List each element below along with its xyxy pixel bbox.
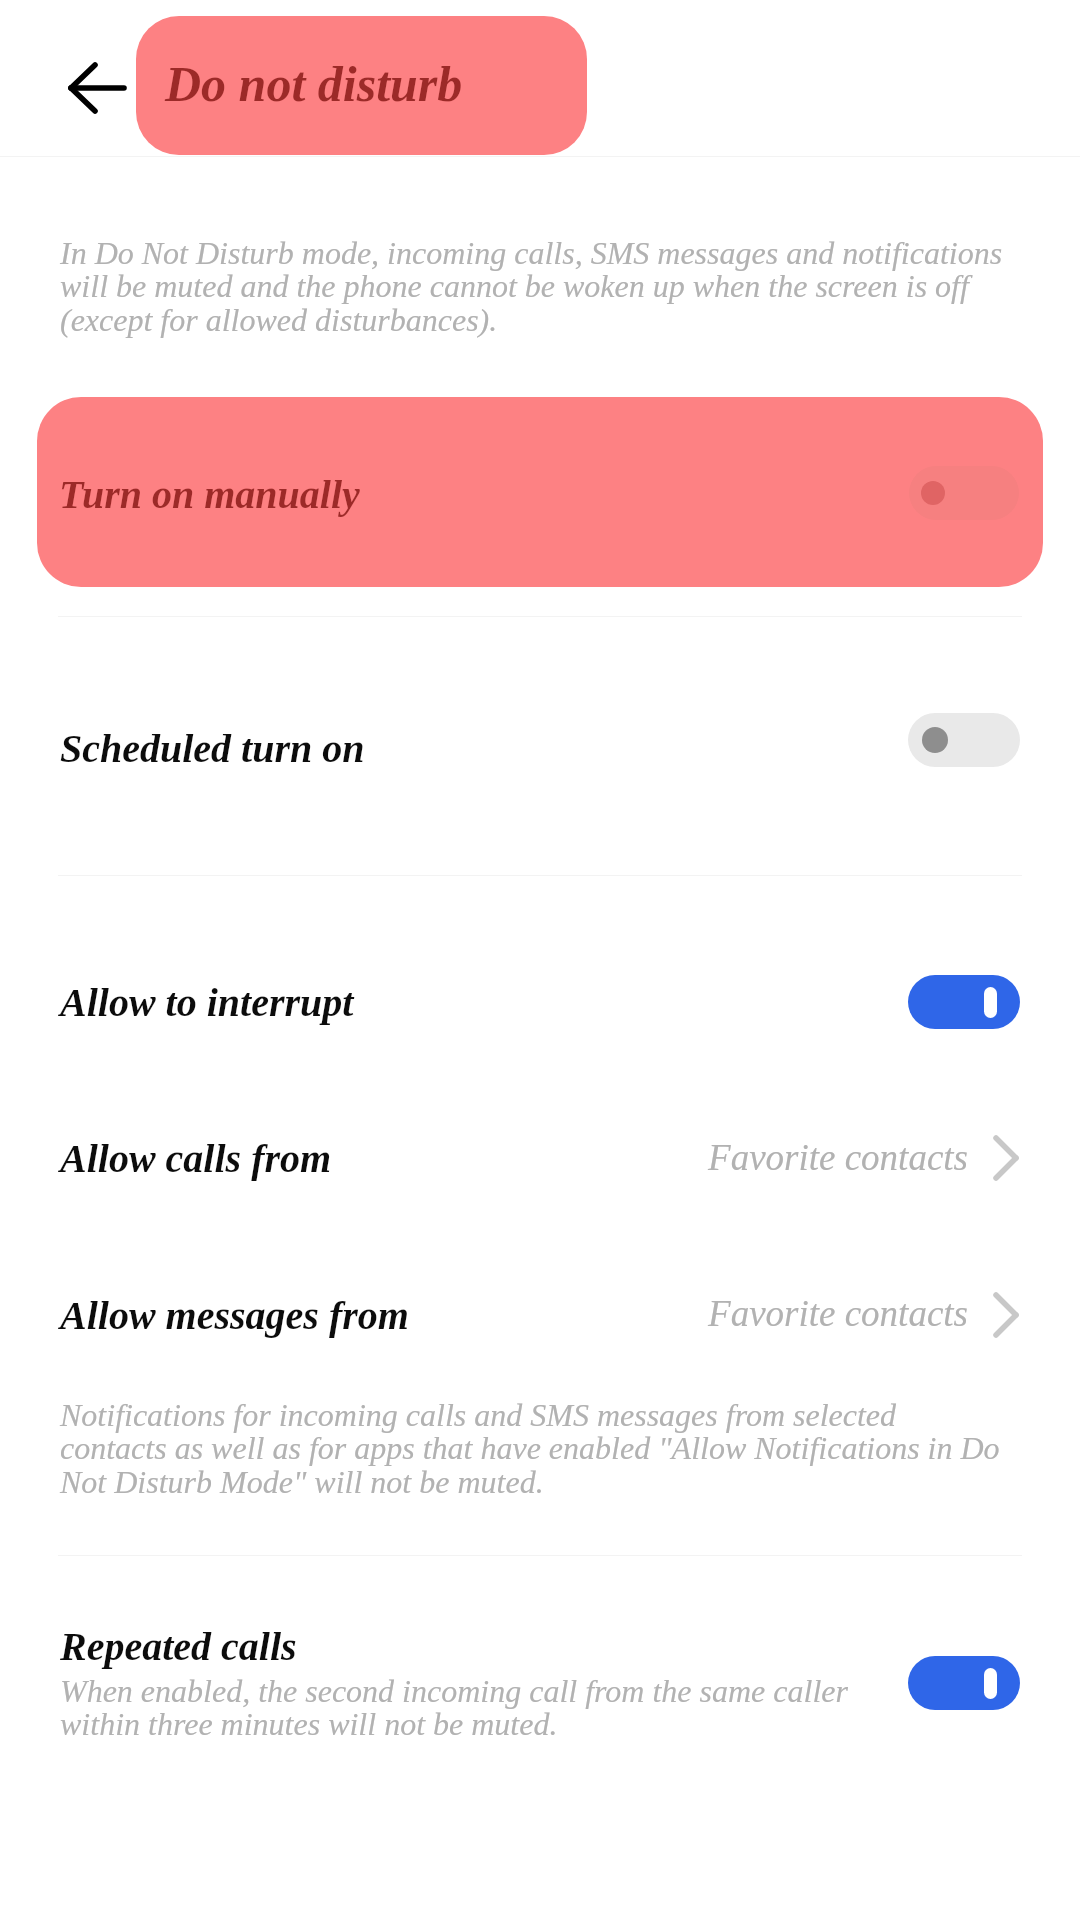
staticText: Favorite contacts — [660, 1293, 968, 1334]
staticText: Do not disturb — [165, 56, 463, 111]
button[interactable]: Do not disturb — [136, 16, 587, 155]
button[interactable]: Open — [992, 1291, 1020, 1339]
staticText: Allow to interrupt — [60, 980, 354, 1024]
button[interactable]: Turn on manually — [37, 397, 1043, 587]
button[interactable]: Open — [992, 1134, 1020, 1182]
staticText: Allow calls from — [60, 1136, 332, 1180]
staticText: Scheduled turn on — [60, 726, 365, 770]
staticText: In Do Not Disturb mode, incoming calls, … — [60, 235, 1004, 338]
staticText: Turn on manually — [59, 472, 360, 516]
staticText: Notifications for incoming calls and SMS… — [60, 1397, 1004, 1500]
button[interactable]: Toggle on — [908, 975, 1020, 1029]
staticText: Allow messages from — [60, 1293, 409, 1337]
staticText: When enabled, the second incoming call f… — [60, 1673, 890, 1742]
staticText: Favorite contacts — [660, 1137, 968, 1178]
button[interactable]: Repeated calls — [0, 1575, 1080, 1790]
button[interactable]: Toggle on — [908, 1656, 1020, 1710]
staticText: Repeated calls — [60, 1624, 297, 1668]
button[interactable]: Toggle off — [908, 713, 1020, 767]
button[interactable]: Back — [58, 49, 136, 127]
button[interactable]: Turn on manually toggle — [909, 466, 1019, 520]
